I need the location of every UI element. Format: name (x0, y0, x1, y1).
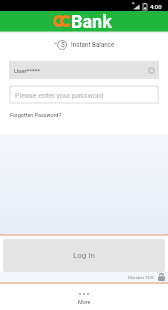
staticText: Forgotten Password? (10, 112, 61, 118)
staticText: More (78, 299, 91, 305)
staticText: $ (61, 41, 65, 49)
staticText: Log In (73, 251, 95, 260)
staticText: Please enter your password (15, 91, 104, 99)
staticText: 4:00 (150, 3, 162, 10)
other: Clear username (148, 67, 155, 74)
staticText: User***** (14, 67, 40, 74)
button[interactable]: $ (0, 34, 168, 55)
button[interactable]: User***** (9, 61, 159, 79)
button[interactable]: Forgotten Password? (6, 108, 65, 122)
staticText: Instant Balance (71, 41, 115, 48)
staticText: Member FDIC (128, 275, 155, 280)
button[interactable]: More (0, 287, 168, 310)
button[interactable]: Log In (3, 239, 165, 272)
staticText: Bank (71, 11, 112, 31)
button[interactable]: Please enter your password (10, 86, 158, 103)
